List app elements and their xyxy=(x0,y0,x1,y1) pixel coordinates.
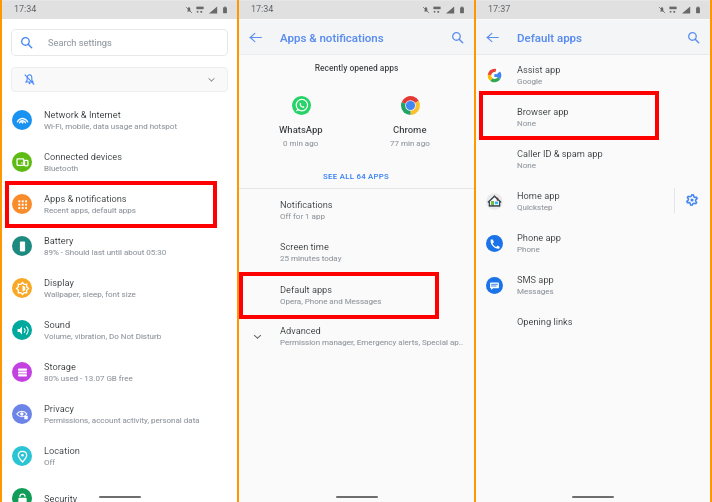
staticText: Network & Internet xyxy=(44,109,121,120)
staticText: Search settings xyxy=(48,37,112,48)
staticText: Notifications xyxy=(280,199,333,210)
staticText: Google xyxy=(517,77,543,86)
button[interactable]: Chrome xyxy=(355,96,465,148)
button[interactable]: Home app xyxy=(476,180,710,222)
staticText: 80% used - 13.07 GB free xyxy=(44,374,133,383)
staticText: Chrome xyxy=(393,124,427,135)
staticText: Opening links xyxy=(517,316,573,327)
staticText: Off for 1 app xyxy=(280,212,325,221)
staticText: Privacy xyxy=(44,403,74,414)
button[interactable]: Location xyxy=(2,435,237,477)
staticText: 17:34 xyxy=(14,4,37,15)
staticText: Wallpaper, sleep, font size xyxy=(44,290,136,299)
button[interactable]: Notifications xyxy=(239,189,474,231)
staticText: Display xyxy=(44,277,74,288)
staticText: None xyxy=(517,161,536,170)
staticText: 25 minutes today xyxy=(280,254,342,263)
staticText: Wi-Fi, mobile, data usage and hotspot xyxy=(44,122,178,131)
button[interactable]: Search xyxy=(449,29,465,45)
staticText: Battery xyxy=(44,235,74,246)
button[interactable]: Search settings xyxy=(11,29,228,56)
button[interactable]: Apps & notifications xyxy=(2,183,237,225)
staticText: Caller ID & spam app xyxy=(517,148,603,159)
button[interactable]: Display xyxy=(2,267,237,309)
staticText: 89% - Should last until about 05:30 xyxy=(44,248,167,257)
button[interactable]: Default apps xyxy=(239,274,474,316)
button[interactable]: Privacy xyxy=(2,393,237,435)
button[interactable]: Screen time xyxy=(239,231,474,273)
staticText: 77 min ago xyxy=(390,139,430,148)
button[interactable]: Storage xyxy=(2,351,237,393)
button[interactable]: SEE ALL 64 APPS xyxy=(239,167,474,185)
button[interactable]: Network & Internet xyxy=(2,99,237,141)
button[interactable]: Phone app xyxy=(476,222,710,264)
button[interactable]: Back xyxy=(247,29,263,45)
button[interactable]: Battery xyxy=(2,225,237,267)
staticText: Permission manager, Emergency alerts, Sp… xyxy=(280,338,463,347)
staticText: Security xyxy=(44,493,78,502)
staticText: Apps & notifications xyxy=(280,31,384,44)
staticText: Default apps xyxy=(280,284,333,295)
staticText: Location xyxy=(44,445,80,456)
staticText: Screen time xyxy=(280,241,329,252)
staticText: Home app xyxy=(517,190,560,201)
staticText: 17:34 xyxy=(251,4,274,15)
staticText: SMS app xyxy=(517,274,554,285)
staticText: Apps & notifications xyxy=(44,193,127,204)
staticText: 17:37 xyxy=(488,4,511,15)
staticText: Messages xyxy=(517,287,554,296)
staticText: Assist app xyxy=(517,64,561,75)
staticText: Volume, vibration, Do Not Disturb xyxy=(44,332,162,341)
staticText: Storage xyxy=(44,361,76,372)
staticText: Sound xyxy=(44,319,71,330)
button[interactable]: Opening links xyxy=(476,300,710,342)
staticText: Connected devices xyxy=(44,151,123,162)
button[interactable]: Security xyxy=(2,477,237,502)
staticText: 0 min ago xyxy=(283,139,319,148)
button[interactable] xyxy=(11,67,228,92)
button[interactable]: Browser app xyxy=(476,96,710,138)
button[interactable]: Assist app xyxy=(476,54,710,96)
button[interactable]: Sound xyxy=(2,309,237,351)
button[interactable]: Advanced xyxy=(239,315,474,357)
button[interactable]: Caller ID & spam app xyxy=(476,138,710,180)
staticText: Advanced xyxy=(280,325,321,336)
button[interactable]: WhatsApp xyxy=(246,96,356,148)
staticText: Quickstep xyxy=(517,203,553,212)
staticText: Permissions, account activity, personal … xyxy=(44,416,200,425)
staticText: Recently opened apps xyxy=(239,63,474,73)
staticText: Browser app xyxy=(517,106,569,117)
button[interactable]: Back xyxy=(484,29,500,45)
staticText: Opera, Phone and Messages xyxy=(280,297,382,306)
staticText: Off xyxy=(44,458,56,467)
staticText: Phone xyxy=(517,245,540,254)
staticText: Default apps xyxy=(517,31,582,44)
button[interactable]: Connected devices xyxy=(2,141,237,183)
button[interactable]: Settings xyxy=(681,189,703,211)
staticText: Bluetooth xyxy=(44,164,79,173)
staticText: SEE ALL 64 APPS xyxy=(323,172,390,181)
staticText: Phone app xyxy=(517,232,561,243)
staticText: Recent apps, default apps xyxy=(44,206,136,215)
staticText: WhatsApp xyxy=(279,124,323,135)
button[interactable]: Search xyxy=(685,29,701,45)
button[interactable]: SMS app xyxy=(476,264,710,306)
staticText: None xyxy=(517,119,536,128)
